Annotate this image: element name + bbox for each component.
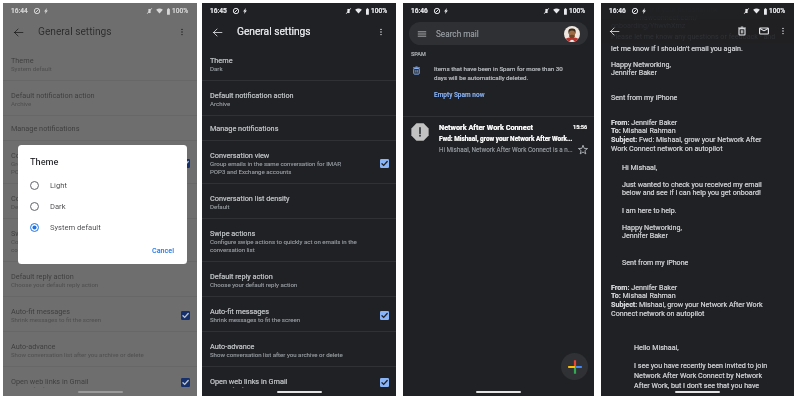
button[interactable]: Back [209, 24, 225, 40]
staticText: Default [11, 203, 31, 210]
button[interactable]: Conversation view [3, 140, 197, 183]
staticText: Swipe actions [11, 229, 57, 238]
staticText: 16:45 [210, 7, 227, 15]
button[interactable]: Mark unread [756, 23, 772, 39]
button[interactable]: Default reply action [3, 261, 197, 296]
button[interactable]: Conversation view [202, 140, 396, 183]
staticText: Auto-advance [11, 342, 56, 351]
staticText: 100% [569, 7, 586, 15]
button[interactable]: Manage notifications [3, 115, 197, 140]
staticText: Show conversation list after you archive… [11, 351, 144, 358]
staticText: Dark [50, 202, 66, 211]
staticText: System default [50, 223, 101, 232]
staticText: Configure swipe actions to quickly act o… [210, 238, 357, 253]
staticText: From: Jennifer Baker To: Mishaal Rahman … [611, 283, 763, 318]
staticText: 100% [371, 7, 388, 15]
button[interactable]: Auto-advance [202, 331, 396, 366]
staticText: Manage notifications [210, 124, 279, 133]
button[interactable]: Star [577, 144, 588, 155]
staticText: Show conversation list after you archive… [210, 351, 343, 358]
button[interactable]: Theme [3, 45, 197, 80]
button[interactable]: System default [18, 217, 187, 238]
button[interactable]: More options [174, 24, 190, 40]
staticText: Group emails in the same conversation fo… [11, 160, 143, 175]
button[interactable]: Auto-fit messages [3, 296, 197, 331]
staticText: Light [50, 181, 67, 190]
staticText: I appreciate it if your personal link [611, 5, 718, 13]
button[interactable]: Compose [561, 353, 588, 380]
staticText: Hi Mishaal, Network After Work Connect i… [439, 146, 574, 153]
staticText: Default notification action [210, 91, 294, 100]
staticText: Conversation view [210, 151, 270, 160]
staticText: Choose your default reply action [210, 281, 298, 288]
button[interactable]: Back [606, 23, 622, 39]
staticText: System default [11, 65, 52, 72]
staticText: Happy Networking, Jennifer Baker [611, 60, 671, 77]
staticText: Just wanted to check you received my ema… [622, 180, 762, 197]
button[interactable]: Conversation list density [3, 183, 197, 218]
staticText: Conversation list density [11, 194, 91, 203]
staticText: 100% [769, 7, 786, 15]
staticText: Theme [30, 156, 59, 167]
staticText: Open web links in Gmail [210, 377, 288, 386]
staticText: 16:44 [11, 7, 28, 15]
staticText: Open web links in Gmail [11, 377, 89, 386]
button[interactable]: Light [18, 175, 187, 196]
button[interactable]: More options [373, 24, 389, 40]
staticText: Archive [210, 100, 231, 107]
button[interactable]: Back [10, 24, 26, 40]
button[interactable]: Auto-fit messages [202, 296, 396, 331]
staticText: Dark [210, 65, 223, 72]
button[interactable]: Swipe actions [202, 218, 396, 261]
button[interactable]: Auto-advance [3, 331, 197, 366]
staticText: Cancel [152, 246, 175, 254]
staticText: Turn on for faster browsing [210, 386, 284, 388]
staticText: 100% [172, 7, 189, 15]
staticText: onboarding/YhwvhXmz [611, 21, 686, 29]
button[interactable]: Theme [202, 45, 396, 80]
button[interactable]: Open web links in Gmail [202, 366, 396, 396]
staticText: let me know if I shouldn't email you aga… [611, 44, 743, 52]
staticText: Theme [210, 56, 233, 65]
staticText: Search mail [436, 29, 479, 39]
button[interactable]: Network After Work Connect [403, 117, 594, 161]
staticText: Choose your default reply action [11, 281, 99, 288]
staticText: Auto-advance [210, 342, 255, 351]
button[interactable]: Swipe actions [3, 218, 197, 261]
button[interactable]: Delete [734, 23, 750, 39]
staticText: Hello Mishaal, [634, 343, 679, 351]
staticText: Happy Networking, Jennifer Baker [622, 223, 682, 240]
button[interactable]: Open web links in Gmail [3, 366, 197, 396]
button[interactable]: Manage notifications [202, 115, 396, 140]
button[interactable]: Default reply action [202, 261, 396, 296]
button[interactable]: Conversation list density [202, 183, 396, 218]
button[interactable]: Search mail [409, 22, 588, 45]
staticText: Empty Spam now [434, 91, 485, 99]
staticText: General settings [38, 26, 112, 38]
button[interactable]: Default notification action [3, 80, 197, 115]
staticText: 15:56 [573, 124, 588, 131]
staticText: Group emails in the same conversation fo… [210, 160, 342, 175]
staticText: Shrink messages to fit the screen [11, 316, 102, 323]
staticText: Shrink messages to fit the screen [210, 316, 301, 323]
staticText: I am here to help. [622, 206, 677, 214]
button[interactable]: Default notification action [202, 80, 396, 115]
staticText: Fwd: Mishaal, grow your Network After Wo… [439, 135, 573, 143]
button[interactable]: Empty Spam now [434, 91, 485, 99]
staticText: Hi Mishaal, [622, 163, 658, 171]
staticText: Theme [11, 56, 34, 65]
staticText: Manage notifications [11, 124, 80, 133]
staticText: Auto-fit messages [11, 307, 70, 316]
button[interactable]: More options [776, 24, 790, 38]
staticText: Default notification action [11, 91, 95, 100]
staticText: From: Jennifer Baker To: Mishaal Rahman … [611, 118, 762, 153]
button[interactable]: Dark [18, 196, 187, 217]
staticText: w.nawconnect.com/ [633, 13, 698, 21]
button[interactable]: Cancel [147, 242, 180, 258]
staticText: Items that have been in Spam for more th… [434, 65, 563, 81]
staticText: Conversation list density [210, 194, 290, 203]
staticText: Swipe actions [210, 229, 256, 238]
staticText: 16:46 [411, 7, 428, 15]
staticText: Network After Work Connect [439, 123, 569, 132]
